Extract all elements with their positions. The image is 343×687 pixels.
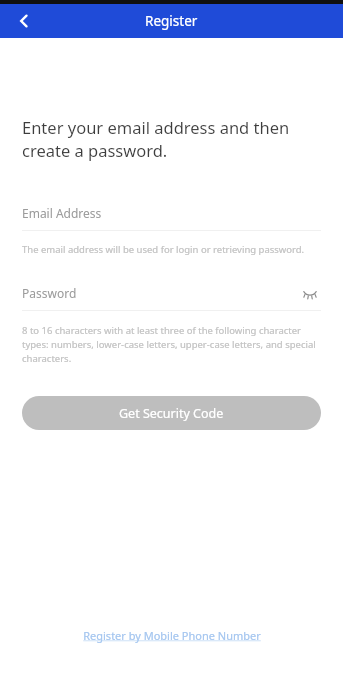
staticText: 8 to 16 characters with at least three o…: [22, 324, 321, 365]
staticText: Password: [22, 285, 299, 301]
staticText: Register: [145, 12, 198, 30]
button[interactable]: Back: [10, 7, 38, 35]
staticText: Get Security Code: [119, 405, 224, 422]
staticText: The email address will be used for login…: [22, 243, 305, 256]
button[interactable]: Password: [22, 282, 321, 311]
button[interactable]: Get Security Code: [22, 396, 321, 430]
button[interactable]: Email Address: [22, 205, 321, 231]
staticText: Register by Mobile Phone Number: [83, 628, 261, 643]
button[interactable]: Register by Mobile Phone Number: [75, 624, 269, 647]
button[interactable]: Show password: [299, 282, 321, 304]
staticText: Email Address: [22, 205, 102, 221]
staticText: Enter your email address and then create…: [22, 116, 321, 162]
